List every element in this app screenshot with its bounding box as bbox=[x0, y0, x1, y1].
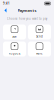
staticText: 9:41 bbox=[3, 2, 10, 5]
staticText: More bbox=[36, 52, 43, 55]
button[interactable]: Back bbox=[2, 7, 9, 14]
staticText: Request bbox=[8, 52, 20, 55]
staticText: Send bbox=[36, 35, 43, 38]
button[interactable]: More bbox=[28, 41, 51, 56]
staticText: Scan bbox=[12, 35, 17, 38]
staticText: Choose how you want to pay bbox=[7, 17, 47, 20]
button[interactable]: Scan bbox=[3, 24, 26, 39]
button[interactable]: Request bbox=[3, 41, 26, 56]
staticText: Payments bbox=[17, 8, 36, 13]
button[interactable]: Send bbox=[28, 24, 51, 39]
